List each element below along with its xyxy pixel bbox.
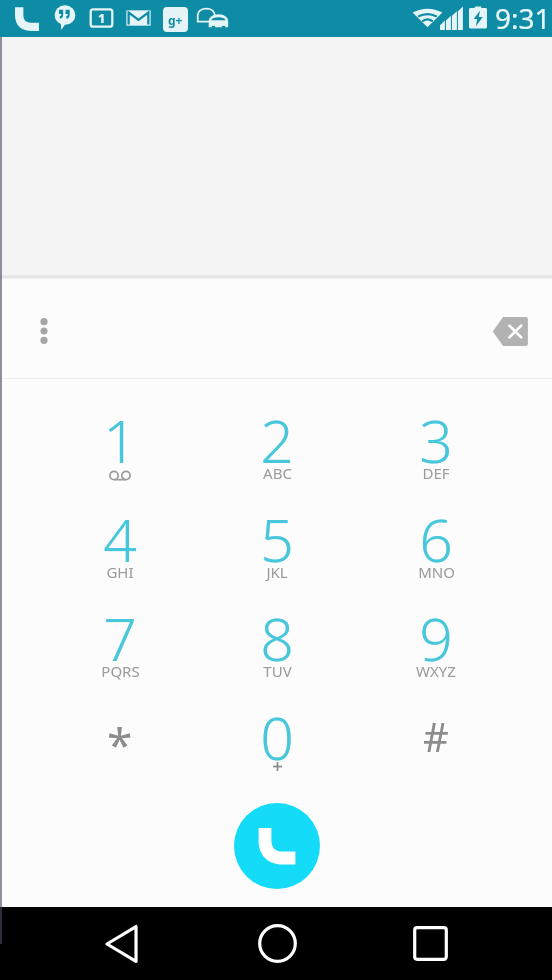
button[interactable]: 4 xyxy=(45,499,195,595)
button[interactable]: 7 xyxy=(45,598,195,694)
staticText: WXYZ xyxy=(416,661,456,681)
staticText: 1 xyxy=(98,9,106,27)
button[interactable]: Recents xyxy=(392,907,468,980)
staticText: 9:31 xyxy=(495,0,551,36)
button[interactable]: 0 xyxy=(202,697,352,793)
staticText: DEF xyxy=(422,463,450,483)
staticText: 6 xyxy=(419,499,453,579)
button[interactable]: Backspace xyxy=(484,305,536,357)
button[interactable]: 6 xyxy=(361,499,511,595)
button[interactable]: * xyxy=(45,696,195,792)
staticText: 7 xyxy=(103,598,137,678)
button[interactable]: Back xyxy=(83,907,159,980)
button[interactable]: 9 xyxy=(361,598,511,694)
button[interactable]: 5 xyxy=(202,499,352,595)
staticText: MNO xyxy=(418,562,455,582)
staticText: JKL xyxy=(266,562,288,582)
staticText: 8 xyxy=(260,598,294,678)
button[interactable]: 1 xyxy=(45,400,195,496)
staticText: g+ xyxy=(168,12,183,28)
staticText: 3 xyxy=(419,400,453,480)
button[interactable]: More options xyxy=(20,307,68,355)
staticText: 5 xyxy=(260,499,294,579)
button[interactable]: 8 xyxy=(202,598,352,694)
staticText: 0 xyxy=(260,697,294,777)
staticText: * xyxy=(107,713,133,776)
button[interactable]: 3 xyxy=(361,400,511,496)
staticText: ABC xyxy=(263,463,292,483)
staticText: 9 xyxy=(419,598,453,678)
button[interactable]: Home xyxy=(239,907,315,980)
staticText: PQRS xyxy=(101,661,140,681)
staticText: 2 xyxy=(260,400,294,480)
staticText: TUV xyxy=(263,661,292,681)
staticText: 4 xyxy=(103,499,137,579)
staticText: 1 xyxy=(103,400,137,480)
staticText: # xyxy=(423,709,449,763)
button[interactable]: 2 xyxy=(202,400,352,496)
button[interactable]: # xyxy=(361,688,511,784)
button[interactable]: Call xyxy=(234,803,320,889)
staticText: GHI xyxy=(106,562,134,582)
